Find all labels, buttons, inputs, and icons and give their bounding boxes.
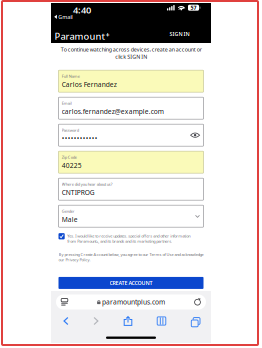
button[interactable]: Gmail [53, 13, 73, 21]
button[interactable]: Agree to receive updates [58, 233, 65, 239]
staticText: Full Name [62, 74, 80, 79]
button[interactable]: Paramount Plus home [54, 28, 110, 44]
staticText: By pressing Create Account below, you ag… [58, 252, 203, 262]
staticText: Yes, I would like to receive updates, sp… [67, 233, 190, 244]
button[interactable]: Forward [81, 313, 111, 329]
staticText: 4:40 [73, 4, 91, 16]
staticText: Zip Code [62, 155, 77, 160]
staticText: Email [62, 101, 72, 106]
staticText: Password [62, 128, 79, 133]
staticText: SIGN IN [169, 30, 189, 38]
button[interactable]: Back [51, 313, 81, 329]
button[interactable]: Where did you hear about us? [58, 178, 203, 200]
button[interactable]: Tabs [178, 313, 211, 329]
staticText: To continue watching across devices, cre… [60, 46, 201, 60]
staticText: 40225 [62, 161, 82, 170]
button[interactable]: Gender [58, 205, 203, 227]
button[interactable]: SIGN IN [168, 28, 191, 40]
staticText: Male [62, 215, 78, 224]
staticText: •••••••••••• [62, 134, 98, 143]
staticText: CREATE ACCOUNT [109, 279, 152, 286]
button[interactable]: Zip Code [58, 151, 203, 173]
staticText: Where did you hear about us? [62, 182, 113, 187]
button[interactable]: Email [58, 97, 203, 119]
staticText: Gmail [58, 13, 72, 20]
button[interactable]: Share [111, 313, 145, 329]
staticText: Carlos Fernandez [62, 80, 117, 89]
button[interactable]: Bookmarks [145, 313, 178, 329]
staticText: + [106, 30, 110, 39]
staticText: Paramount [54, 30, 105, 42]
button[interactable]: Page settings [56, 295, 73, 309]
staticText: Gender [62, 209, 75, 214]
staticText: carlos.fernandez@example.com [62, 107, 164, 116]
staticText: paramountplus.com [102, 298, 165, 306]
button[interactable]: Full Name [58, 70, 203, 92]
staticText: 57 [190, 4, 196, 11]
staticText: CNTIPROG [62, 188, 95, 197]
button[interactable]: CREATE ACCOUNT [58, 277, 203, 289]
button[interactable]: Password [58, 124, 203, 146]
button[interactable]: Show password [188, 132, 200, 138]
button[interactable]: Reload [189, 295, 206, 309]
